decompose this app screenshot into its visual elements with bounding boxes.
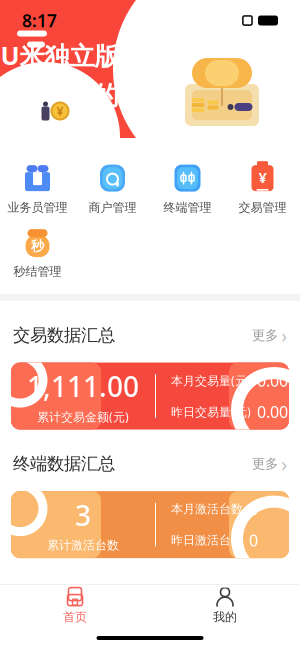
staticText: 0.00 bbox=[257, 370, 288, 391]
staticText: 0 bbox=[249, 498, 258, 520]
staticText: 终端管理 bbox=[163, 200, 211, 215]
staticText: 交易管理 bbox=[238, 200, 286, 215]
button[interactable]: 更多 bbox=[242, 318, 287, 353]
button[interactable]: 秒 bbox=[0, 228, 75, 278]
staticText: ¥ bbox=[258, 168, 266, 187]
staticText: 昨日交易量(元) bbox=[171, 404, 251, 420]
staticText: 我的 bbox=[213, 610, 237, 624]
staticText: 昨日激活台数 bbox=[171, 533, 243, 548]
button[interactable]: 1,111.00 bbox=[11, 363, 289, 430]
staticText: › bbox=[281, 322, 287, 349]
staticText: 1,111.00 bbox=[27, 367, 139, 405]
staticText: U米独立版 bbox=[0, 38, 119, 72]
button[interactable]: 业务员管理 bbox=[0, 164, 75, 214]
staticText: 累计交易金额(元) bbox=[37, 409, 129, 425]
button[interactable]: 首页 bbox=[0, 585, 150, 627]
button[interactable]: 3 bbox=[11, 491, 289, 558]
staticText: 业务员管理 bbox=[7, 200, 67, 215]
staticText: 终端数据汇总 bbox=[13, 453, 115, 474]
button[interactable]: 更多 bbox=[242, 447, 287, 481]
staticText: 更多 bbox=[252, 327, 278, 343]
staticText: 3 bbox=[75, 497, 91, 534]
staticText: 0.00 bbox=[257, 401, 288, 422]
staticText: 更多 bbox=[252, 456, 278, 472]
staticText: 秒 bbox=[31, 238, 44, 254]
staticText: 本月激活台数 bbox=[171, 502, 243, 516]
staticText: 本月交易量(元) bbox=[171, 372, 251, 388]
button[interactable]: 终端管理 bbox=[150, 164, 225, 214]
button[interactable]: 我的 bbox=[150, 585, 300, 627]
staticText: 交易数据汇总 bbox=[13, 325, 115, 346]
staticText: 累计激活台数 bbox=[47, 538, 119, 552]
button[interactable]: ¥ bbox=[225, 164, 300, 214]
button[interactable]: 商户管理 bbox=[75, 164, 150, 214]
staticText: ¥ bbox=[56, 103, 63, 119]
staticText: 秒结管理 bbox=[13, 264, 61, 279]
staticText: › bbox=[281, 451, 287, 477]
staticText: 首页 bbox=[63, 610, 87, 624]
staticText: 新模式的开始! bbox=[18, 78, 175, 112]
staticText: 8:17 bbox=[22, 9, 57, 32]
staticText: 商户管理 bbox=[88, 200, 136, 215]
staticText: 0 bbox=[249, 530, 258, 551]
